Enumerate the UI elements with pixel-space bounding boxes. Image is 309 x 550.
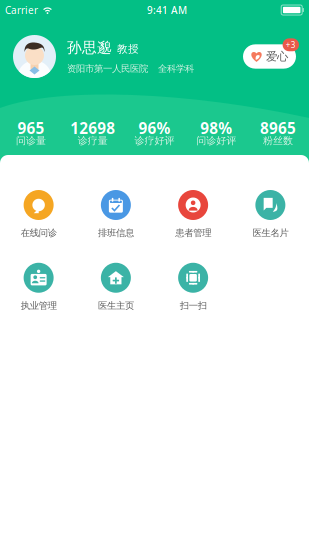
staticText: 965 xyxy=(17,117,44,138)
staticText: 8965 xyxy=(260,117,296,138)
staticText: 资阳市第一人民医院 xyxy=(67,63,148,75)
staticText: 96% xyxy=(138,117,170,138)
staticText: Carrier xyxy=(5,3,38,17)
button[interactable]: 在线问诊 xyxy=(0,190,77,239)
staticText: 问诊好评 xyxy=(196,134,236,147)
staticText: 98% xyxy=(200,117,232,138)
button[interactable]: 扫一扫 xyxy=(154,263,232,312)
button[interactable]: 爱心 xyxy=(243,44,296,69)
button[interactable]: 患者管理 xyxy=(154,190,232,239)
staticText: 诊疗好评 xyxy=(134,134,174,147)
staticText: 爱心 xyxy=(266,49,288,64)
staticText: 医生名片 xyxy=(252,227,288,239)
staticText: 在线问诊 xyxy=(21,227,57,239)
staticText: 全科学科 xyxy=(158,63,194,75)
button[interactable]: 医生主页 xyxy=(77,263,154,312)
staticText: 执业管理 xyxy=(21,300,57,312)
staticText: 医生主页 xyxy=(98,300,134,312)
staticText: 排班信息 xyxy=(98,227,134,239)
staticText: 问诊量 xyxy=(16,134,46,147)
staticText: 扫一扫 xyxy=(180,300,207,312)
staticText: 9:41 AM xyxy=(147,3,187,17)
staticText: 孙思邈 xyxy=(67,38,112,57)
staticText: 教授 xyxy=(117,42,139,56)
staticText: 粉丝数 xyxy=(263,134,293,147)
staticText: 患者管理 xyxy=(175,227,211,239)
staticText: 12698 xyxy=(70,117,115,138)
staticText: 诊疗量 xyxy=(78,134,108,147)
staticText: +3 xyxy=(286,39,296,50)
button[interactable]: 排班信息 xyxy=(77,190,154,239)
button[interactable]: 医生名片 xyxy=(232,190,309,239)
button[interactable]: 执业管理 xyxy=(0,263,77,312)
